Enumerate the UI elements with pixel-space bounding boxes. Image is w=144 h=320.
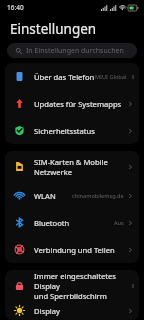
button[interactable]: In Einstellungen durchsuchen: [7, 43, 137, 58]
button[interactable]: Updates für Systemapps: [5, 90, 139, 117]
staticText: Einstellungen: [10, 20, 97, 38]
other: Über das Telefon: [14, 71, 25, 82]
staticText: Immer eingeschaltetes Display und Sperrb…: [34, 271, 133, 301]
button[interactable]: Display: [5, 301, 139, 320]
button[interactable]: Über das Telefon: [5, 63, 139, 90]
staticText: WLAN: [34, 191, 56, 201]
staticText: Display: [34, 306, 60, 316]
button[interactable]: Verbindung und Teilen: [5, 236, 139, 263]
button[interactable]: Immer eingeschaltetes Display und Sperrb…: [5, 270, 139, 301]
staticText: Updates für Systemapps: [34, 99, 122, 109]
button[interactable]: Bluetooth: [5, 209, 139, 236]
button[interactable]: WLAN: [5, 182, 139, 209]
staticText: Sicherheitsstatus: [34, 126, 95, 136]
staticText: Bluetooth: [34, 218, 70, 228]
staticText: In Einstellungen durchsuchen: [26, 46, 124, 56]
staticText: Über das Telefon: [34, 72, 95, 82]
button[interactable]: SIM-Karten & Mobile Netzwerke: [5, 151, 139, 182]
staticText: Verbindung und Teilen: [34, 245, 115, 255]
staticText: Aus: [114, 219, 124, 227]
button[interactable]: Sicherheitsstatus: [5, 117, 139, 144]
staticText: MIUI Global 12.5.3: [95, 73, 133, 81]
staticText: SIM-Karten & Mobile Netzwerke: [34, 157, 108, 177]
staticText: 16:40: [7, 3, 24, 12]
staticText: chinamobilemsg.de: [72, 192, 124, 200]
